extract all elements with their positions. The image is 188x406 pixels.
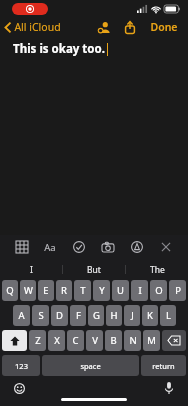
staticText: S <box>38 309 44 322</box>
button[interactable]: return <box>141 355 186 376</box>
button[interactable]: B <box>105 330 122 351</box>
staticText: G <box>93 309 100 322</box>
button[interactable]: Share <box>120 17 140 37</box>
button[interactable]: U <box>112 280 129 301</box>
button[interactable]: G <box>88 305 104 326</box>
button[interactable]: F <box>70 305 86 326</box>
staticText: The <box>150 264 165 276</box>
button[interactable]: Q <box>2 280 18 301</box>
button[interactable]: K <box>142 305 158 326</box>
staticText: space <box>80 361 101 371</box>
staticText: E <box>43 284 49 297</box>
staticText: J <box>131 309 134 322</box>
button[interactable]: N <box>124 330 141 351</box>
button[interactable]: Markup <box>127 237 147 257</box>
staticText: X <box>54 334 60 347</box>
staticText: Z <box>35 334 41 347</box>
button[interactable]: Z <box>29 330 46 351</box>
staticText: 123 <box>15 361 28 371</box>
button[interactable]: T <box>74 280 91 301</box>
button[interactable]: Close <box>156 237 176 257</box>
button[interactable]: P <box>169 280 186 301</box>
staticText: I <box>30 264 33 276</box>
staticText: F <box>76 309 81 322</box>
button[interactable]: All iCloud <box>0 18 67 36</box>
button[interactable]: Checklist <box>69 237 89 257</box>
staticText: P <box>175 284 181 297</box>
staticText: All iCloud <box>14 20 61 34</box>
staticText: D <box>56 309 63 322</box>
button[interactable]: L <box>160 305 176 326</box>
staticText: I <box>138 284 142 297</box>
button[interactable]: C <box>67 330 84 351</box>
staticText: A <box>18 309 25 322</box>
button[interactable]: Y <box>93 280 110 301</box>
button[interactable]: I <box>131 280 148 301</box>
button[interactable]: I <box>0 259 62 280</box>
staticText: R <box>61 284 67 297</box>
staticText: But <box>87 264 101 276</box>
staticText: Q <box>6 284 14 297</box>
button[interactable]: The <box>126 259 188 280</box>
staticText: H <box>110 309 118 322</box>
button[interactable]: D <box>51 305 68 326</box>
button[interactable]: Done <box>147 18 181 36</box>
button[interactable]: X <box>48 330 65 351</box>
button[interactable]: V <box>86 330 103 351</box>
staticText: O <box>155 284 163 297</box>
button[interactable]: S <box>32 305 49 326</box>
button[interactable]: 123 <box>2 355 40 376</box>
button[interactable]: But <box>63 259 125 280</box>
button[interactable]: space <box>42 355 139 376</box>
button[interactable]: Shift <box>2 330 27 351</box>
staticText: L <box>166 309 171 322</box>
button[interactable]: Format <box>40 237 60 257</box>
other: Recording <box>12 3 48 15</box>
button[interactable]: E <box>38 280 54 301</box>
staticText: C <box>72 334 79 347</box>
staticText: V <box>92 334 98 347</box>
button[interactable]: Emoji <box>10 379 28 397</box>
staticText: K <box>147 309 153 322</box>
staticText: Aa <box>44 241 56 254</box>
button[interactable]: Collaborate <box>94 17 114 37</box>
button[interactable]: O <box>150 280 167 301</box>
staticText: Y <box>99 284 105 297</box>
button[interactable]: Backspace <box>162 330 186 351</box>
button[interactable]: Table <box>12 237 32 257</box>
staticText: This is okay too. <box>13 41 105 57</box>
button[interactable]: Dictation <box>160 379 178 397</box>
staticText: W <box>24 284 33 297</box>
staticText: N <box>129 334 137 347</box>
button[interactable]: J <box>124 305 140 326</box>
staticText: U <box>117 284 124 297</box>
button[interactable]: W <box>20 280 36 301</box>
staticText: Done <box>150 20 178 34</box>
staticText: T <box>80 284 86 297</box>
button[interactable]: Camera <box>98 237 118 257</box>
button[interactable]: H <box>106 305 122 326</box>
button[interactable]: M <box>143 330 160 351</box>
button[interactable]: R <box>56 280 72 301</box>
staticText: B <box>110 334 117 347</box>
staticText: return <box>152 361 175 371</box>
staticText: M <box>147 334 156 347</box>
button[interactable]: A <box>13 305 30 326</box>
